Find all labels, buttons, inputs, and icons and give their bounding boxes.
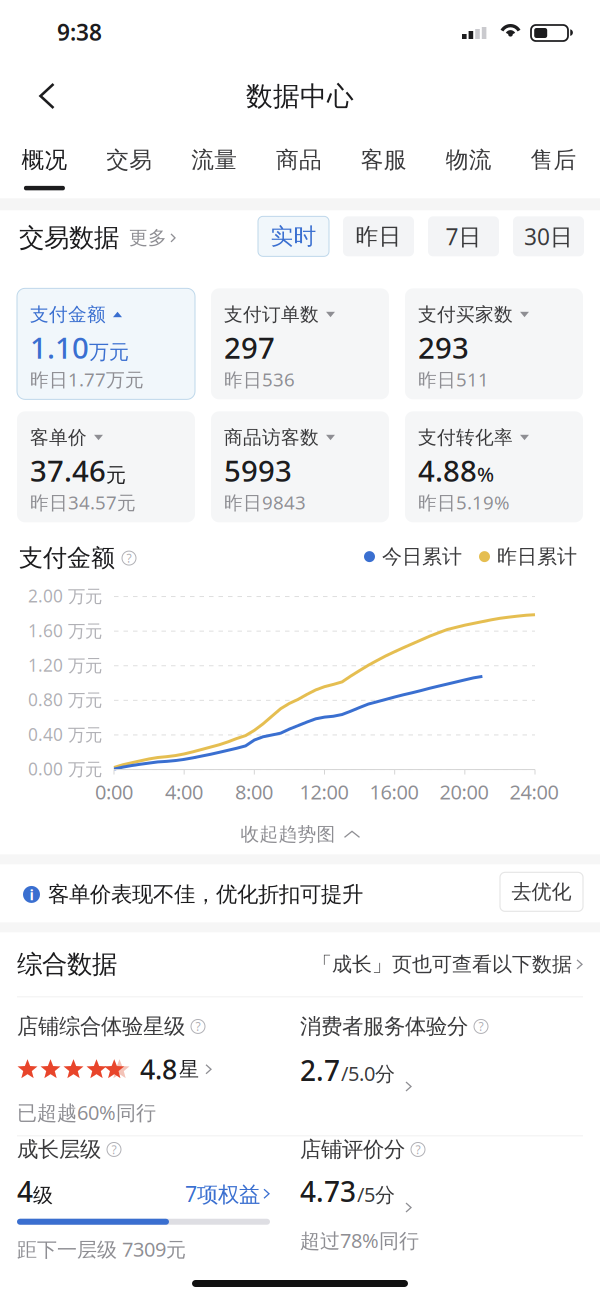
staticText: 综合数据 <box>17 949 117 980</box>
staticText: 昨日5.19% <box>418 490 510 515</box>
staticText: 昨日34.57元 <box>30 490 136 515</box>
button[interactable]: 7项权益 <box>185 1180 270 1208</box>
staticText: 12:00 <box>299 778 348 805</box>
staticText: 商品访客数 <box>224 426 319 449</box>
staticText: 客单价表现不佳，优化折扣可提升 <box>48 881 363 907</box>
staticText: i <box>29 885 33 904</box>
staticText: 超过78%同行 <box>300 1227 419 1254</box>
staticText: 30日 <box>524 221 573 251</box>
staticText: 293 <box>418 328 469 367</box>
staticText: 物流 <box>446 146 492 174</box>
staticText: /5分 <box>357 1181 395 1208</box>
staticText: 2.7 <box>300 1051 340 1089</box>
staticText: ? <box>478 1018 483 1034</box>
button[interactable]: 商品 <box>257 116 341 198</box>
staticText: ? <box>195 1018 200 1034</box>
staticText: 0.80 万元 <box>28 688 102 711</box>
button[interactable]: 物流 <box>426 116 511 198</box>
staticText: 8:00 <box>235 778 273 805</box>
button[interactable]: 7日 <box>428 216 499 256</box>
button[interactable]: 客服 <box>341 116 426 198</box>
staticText: 297 <box>224 328 275 367</box>
button[interactable]: 概况 <box>2 116 87 198</box>
staticText: 昨日累计 <box>497 544 577 569</box>
staticText: 支付买家数 <box>418 303 513 326</box>
staticText: 1.60 万元 <box>28 619 102 642</box>
staticText: 0.00 万元 <box>28 757 102 780</box>
staticText: 0:00 <box>95 778 133 805</box>
staticText: 支付转化率 <box>418 426 513 449</box>
staticText: 20:00 <box>439 778 488 805</box>
staticText: 今日累计 <box>382 544 462 569</box>
button[interactable]: 4.73 <box>300 1173 412 1213</box>
staticText: 昨日511 <box>418 367 489 392</box>
button[interactable]: 2.7 <box>300 1051 412 1092</box>
button[interactable]: 「成长」页也可查看以下数据 <box>312 952 583 977</box>
staticText: /5.0分 <box>341 1060 395 1087</box>
staticText: 1.10 <box>30 328 89 367</box>
staticText: 距下一层级 7309元 <box>17 1236 186 1262</box>
button[interactable]: 更多 <box>129 226 176 249</box>
staticText: 9:38 <box>57 17 102 47</box>
staticText: 去优化 <box>511 880 571 904</box>
staticText: 4:00 <box>165 778 203 805</box>
staticText: 售后 <box>531 146 577 174</box>
button[interactable]: 返回 <box>21 73 73 119</box>
staticText: 37.46 <box>30 451 106 490</box>
staticText: 交易 <box>106 146 152 174</box>
button[interactable]: 4.8 <box>17 1051 212 1087</box>
staticText: 「成长」页也可查看以下数据 <box>312 952 572 977</box>
staticText: 昨日536 <box>224 367 295 392</box>
staticText: 元 <box>106 463 126 487</box>
staticText: 1.20 万元 <box>28 653 102 676</box>
staticText: 7项权益 <box>185 1180 260 1208</box>
staticText: 7日 <box>445 221 481 251</box>
staticText: 4.88 <box>418 451 477 490</box>
staticText: 收起趋势图 <box>240 823 335 846</box>
staticText: 4.73 <box>300 1173 356 1210</box>
staticText: 更多 <box>129 226 167 249</box>
staticText: 16:00 <box>369 778 418 805</box>
staticText: 客服 <box>361 146 407 174</box>
staticText: 数据中心 <box>246 80 354 113</box>
staticText: 客单价 <box>30 426 87 449</box>
staticText: 4 <box>17 1173 33 1210</box>
staticText: 店铺评价分 <box>300 1136 405 1163</box>
staticText: 支付金额 <box>30 303 106 326</box>
staticText: 实时 <box>270 222 316 250</box>
staticText: 支付订单数 <box>224 303 319 326</box>
staticText: % <box>477 461 494 487</box>
staticText: 2.00 万元 <box>28 584 102 607</box>
staticText: 商品 <box>276 146 322 174</box>
staticText: 店铺综合体验星级 <box>17 1013 185 1039</box>
staticText: 概况 <box>21 146 67 174</box>
button[interactable]: 流量 <box>172 116 257 198</box>
staticText: 0.40 万元 <box>28 723 102 746</box>
staticText: 已超越60%同行 <box>17 1099 156 1126</box>
staticText: 成长层级 <box>17 1136 101 1163</box>
staticText: ? <box>126 550 131 566</box>
staticText: 消费者服务体验分 <box>300 1013 468 1039</box>
button[interactable]: 去优化 <box>500 872 583 911</box>
staticText: 级 <box>33 1183 53 1208</box>
button[interactable]: 售后 <box>511 116 596 198</box>
button[interactable]: 交易 <box>87 116 172 198</box>
staticText: ? <box>111 1141 116 1157</box>
staticText: 支付金额 <box>19 543 115 573</box>
staticText: 5993 <box>224 451 292 490</box>
staticText: 昨日9843 <box>224 490 306 515</box>
staticText: 星 <box>179 1057 199 1082</box>
button[interactable]: 实时 <box>258 216 329 256</box>
button[interactable]: 30日 <box>513 216 584 256</box>
staticText: 昨日1.77万元 <box>30 367 144 392</box>
button[interactable]: 收起趋势图 <box>0 819 600 849</box>
staticText: 4.8 <box>140 1051 177 1087</box>
staticText: 交易数据 <box>19 222 119 253</box>
staticText: 昨日 <box>355 222 401 250</box>
staticText: ? <box>415 1141 420 1157</box>
button[interactable]: 昨日 <box>343 216 414 256</box>
staticText: 万元 <box>89 340 129 364</box>
staticText: 24:00 <box>509 778 558 805</box>
staticText: 流量 <box>191 146 237 174</box>
